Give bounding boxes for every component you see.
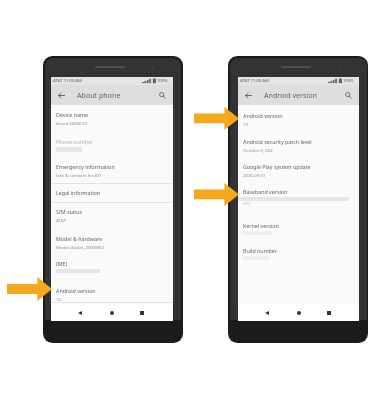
staticText: 10 [56, 296, 61, 302]
staticText: AT&T 11:00 AM [53, 78, 82, 84]
button[interactable]: Back [74, 304, 86, 321]
button[interactable]: Recent apps [323, 304, 335, 321]
button[interactable]: Build number [238, 247, 359, 263]
button[interactable]: Home [106, 304, 118, 321]
button[interactable]: Recent apps [136, 304, 148, 321]
staticText: Info & contacts for AT1 [56, 172, 102, 178]
button[interactable]: Back [261, 304, 273, 321]
staticText: 10 [243, 121, 248, 127]
staticText: 2020-09-01 [243, 172, 266, 178]
staticText: Kernel version [243, 222, 279, 229]
button[interactable]: Navigate up [243, 90, 254, 101]
button[interactable]: Phone number [51, 138, 173, 154]
staticText: Legal information [56, 189, 101, 196]
staticText: Phone number [56, 138, 94, 145]
staticText: Android version [264, 90, 317, 100]
button[interactable]: Model & hardware [51, 235, 173, 251]
button[interactable]: Android version [51, 287, 173, 303]
button[interactable]: Emergency information [51, 163, 173, 179]
button[interactable]: Baseband version [238, 188, 359, 206]
staticText: Model & hardware [56, 235, 103, 242]
button[interactable]: Google Play system update [238, 163, 359, 179]
staticText: Acxed 20000 XT [56, 120, 88, 126]
button[interactable]: Search [157, 90, 168, 101]
staticText: Emergency information [56, 163, 115, 170]
button[interactable]: IMEI [51, 260, 173, 276]
staticText: IMEI [56, 260, 68, 267]
staticText: October 5, 202 [243, 147, 273, 153]
button[interactable]: Home [293, 304, 305, 321]
button[interactable]: Device name [51, 111, 173, 127]
button[interactable]: Android security patch level [238, 138, 359, 154]
button[interactable]: Android version [238, 112, 359, 128]
staticText: Build number [243, 247, 278, 254]
button[interactable]: Search [343, 90, 354, 101]
staticText: Android security patch level [243, 138, 312, 145]
staticText: AT&T 11:00 AM [240, 78, 269, 84]
staticText: Android version [243, 112, 283, 119]
staticText: Baseband version [243, 188, 288, 195]
staticText: 100% [343, 78, 354, 84]
button[interactable]: Legal information [51, 189, 173, 198]
staticText: Google Play system update [243, 163, 311, 170]
staticText: Device name [56, 111, 88, 118]
staticText: About phone [77, 90, 121, 100]
staticText: SIM status [56, 208, 83, 215]
button[interactable]: Navigate up [56, 90, 67, 101]
button[interactable]: SIM status [51, 208, 173, 224]
staticText: 100% [157, 78, 168, 84]
staticText: Android version [56, 287, 96, 294]
staticText: AT&T [56, 217, 67, 223]
staticText: Model: Akvlat_2900MXZ [56, 244, 104, 250]
button[interactable]: Kernel version [238, 222, 359, 238]
